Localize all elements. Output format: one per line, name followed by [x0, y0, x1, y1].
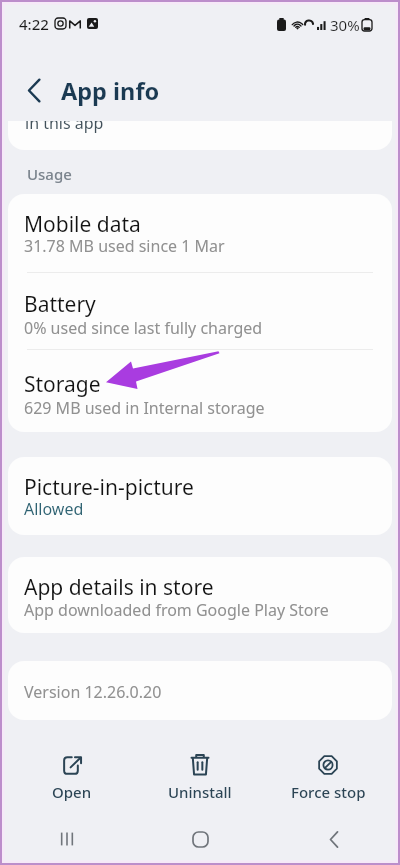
button[interactable]: Force stop	[264, 722, 392, 813]
staticText: App info	[61, 75, 160, 107]
button[interactable]: Back	[9, 62, 59, 118]
staticText: Uninstall	[168, 782, 232, 802]
button[interactable]: Storage	[8, 350, 392, 432]
staticText: Picture-in-picture	[24, 473, 194, 502]
button[interactable]: Uninstall	[136, 722, 264, 813]
staticText: Storage	[24, 370, 101, 399]
staticText: App downloaded from Google Play Store	[24, 599, 329, 621]
button[interactable]: Back	[267, 813, 400, 865]
staticText: 30%	[330, 15, 360, 35]
staticText: 4:22	[19, 14, 49, 34]
staticText: Version 12.26.0.20	[24, 681, 162, 703]
button[interactable]: App details in store	[8, 557, 392, 633]
staticText: Force stop	[291, 782, 366, 802]
staticText: Allowed	[24, 498, 84, 520]
staticText: Battery	[24, 290, 96, 319]
staticText: Usage	[27, 164, 72, 184]
staticText: App details in store	[24, 573, 214, 602]
staticText: 0% used since last fully charged	[24, 317, 263, 339]
button[interactable]: Mobile data	[8, 194, 392, 273]
button[interactable]: in this app	[8, 121, 392, 150]
staticText: Mobile data	[24, 210, 141, 239]
staticText: 629 MB used in Internal storage	[24, 397, 265, 419]
staticText: 31.78 MB used since 1 Mar	[24, 235, 225, 257]
button[interactable]: Battery	[8, 273, 392, 350]
button[interactable]: Home	[134, 813, 267, 865]
button[interactable]: Picture-in-picture	[8, 457, 392, 535]
staticText: Open	[52, 782, 92, 802]
button[interactable]: Open	[8, 722, 136, 813]
staticText: in this app	[25, 121, 104, 134]
button[interactable]: Recents	[0, 813, 134, 865]
